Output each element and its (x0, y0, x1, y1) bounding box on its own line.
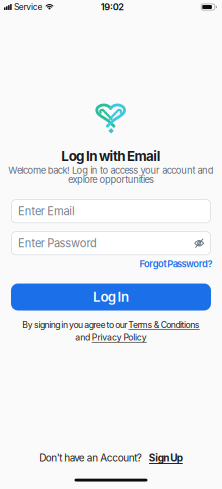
button[interactable]: Don't have an Account? Sign Up (39, 452, 183, 464)
button[interactable]: Enter Password (11, 231, 211, 255)
button[interactable]: Forgot Password? (139, 258, 212, 269)
button[interactable]: Show password (193, 237, 205, 249)
staticText: Log In (93, 289, 129, 305)
staticText: Service (14, 2, 43, 12)
staticText: By signing in you agree to our Terms & C… (22, 319, 200, 330)
staticText: Welcome back! Log in to access your acco… (8, 165, 214, 176)
staticText: Don't have an Account? Sign Up (39, 452, 183, 464)
button[interactable]: Enter Email (11, 199, 211, 223)
button[interactable]: Log In (11, 283, 211, 310)
staticText: Enter Password (18, 236, 97, 250)
staticText: Forgot Password? (139, 258, 212, 269)
staticText: Enter Email (18, 204, 75, 218)
staticText: explore opportunities (68, 174, 154, 185)
staticText: 19:02 (101, 1, 124, 12)
staticText: Log In with Email (61, 148, 161, 164)
staticText: and Privacy Policy (75, 332, 147, 343)
